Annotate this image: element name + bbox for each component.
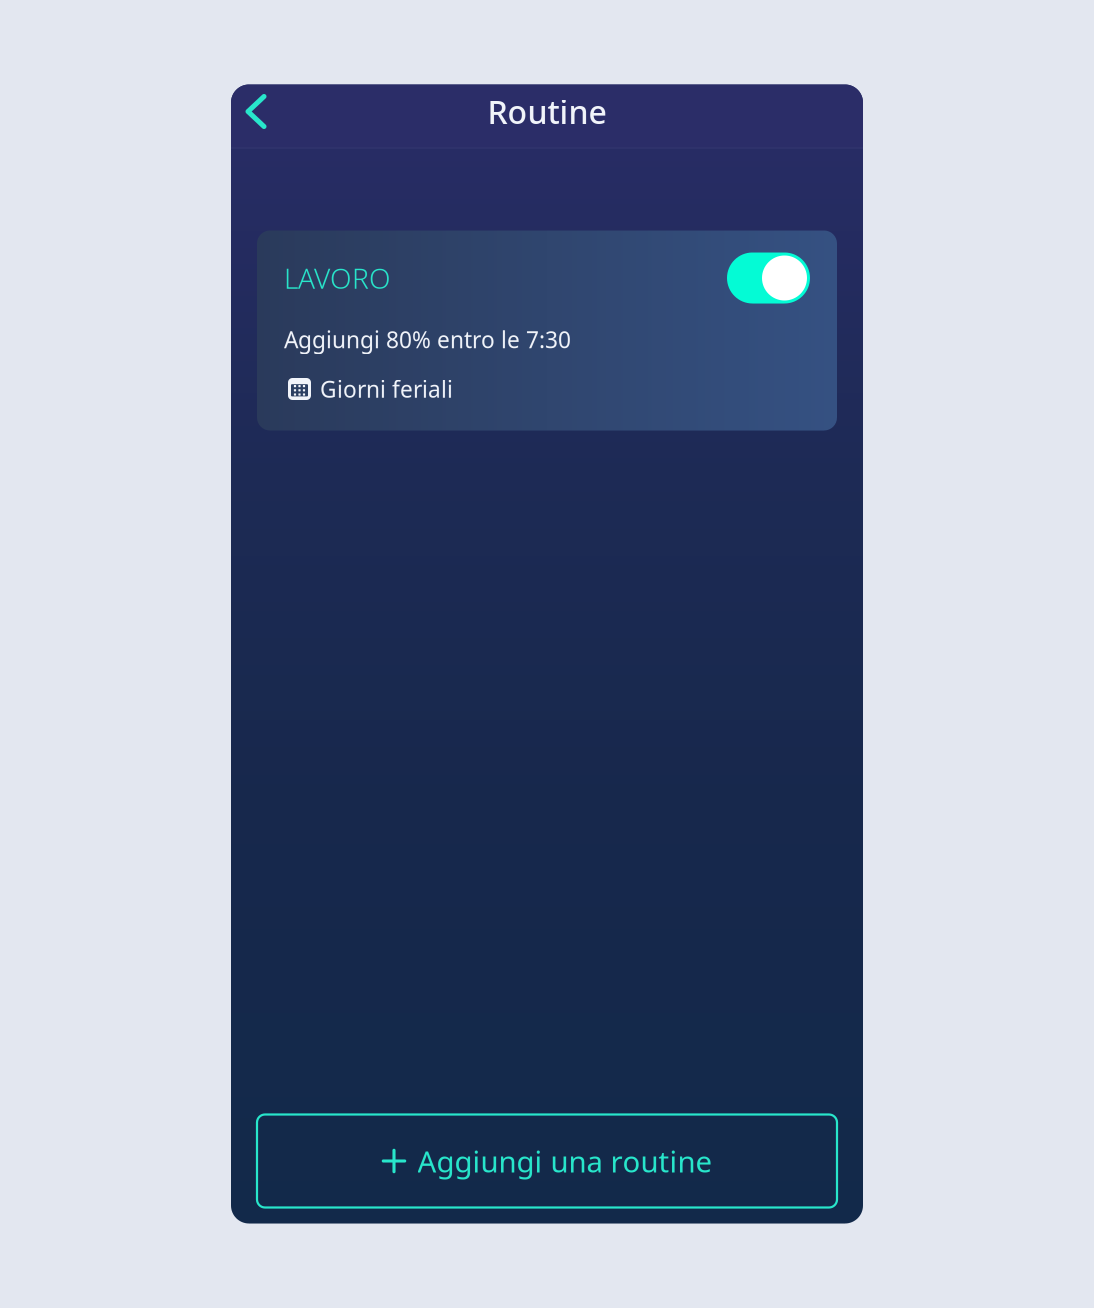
button[interactable]: Aggiungi una routine (257, 1114, 837, 1207)
button[interactable]: Back (231, 84, 279, 139)
staticText: LAVORO (284, 259, 391, 297)
button[interactable]: Attiva routine LAVORO (727, 252, 810, 303)
staticText: Giorni feriali (320, 374, 453, 404)
staticText: Routine (487, 90, 606, 133)
button[interactable]: LAVORO (257, 230, 837, 430)
staticText: Aggiungi una routine (417, 1141, 712, 1180)
staticText: Aggiungi 80% entro le 7:30 (284, 324, 571, 354)
